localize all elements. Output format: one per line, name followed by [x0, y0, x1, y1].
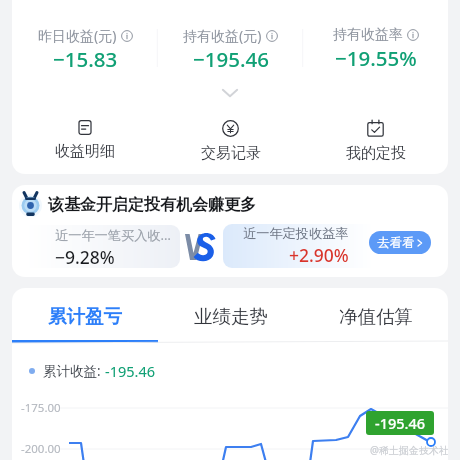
- staticText: 业绩走势: [194, 305, 268, 328]
- staticText: −9.28%: [55, 245, 115, 268]
- staticText: −15.83: [53, 45, 118, 73]
- staticText: 持有收益(元): [183, 26, 262, 45]
- staticText: -200.00: [21, 441, 61, 457]
- button[interactable]: 业绩走势: [158, 305, 303, 343]
- button[interactable]: 持有收益(元): [158, 26, 303, 73]
- staticText: 去看看: [377, 235, 415, 251]
- staticText: 持有收益率: [333, 26, 403, 44]
- staticText: 我的定投: [346, 144, 406, 163]
- staticText: 净值估算: [339, 305, 413, 328]
- button[interactable]: 收益明细: [12, 120, 158, 161]
- staticText: −19.55%: [335, 44, 417, 72]
- staticText: 收益明细: [55, 142, 115, 161]
- staticText: -175.00: [21, 400, 61, 416]
- staticText: -195.46: [375, 413, 426, 433]
- staticText: 昨日收益(元): [38, 26, 117, 45]
- staticText: 近一年定投收益率: [243, 225, 349, 242]
- staticText: 累计盈亏: [48, 305, 122, 328]
- button[interactable]: 累计盈亏: [12, 305, 158, 343]
- staticText: −195.46: [193, 45, 269, 73]
- button[interactable]: 持有收益率: [303, 26, 448, 72]
- button[interactable]: 交易记录: [158, 120, 303, 163]
- staticText: +2.90%: [289, 243, 349, 267]
- button[interactable]: 净值估算: [303, 305, 448, 343]
- staticText: @稀土掘金技术社区: [370, 443, 448, 457]
- button[interactable]: 我的定投: [303, 120, 448, 163]
- staticText: 交易记录: [201, 144, 261, 163]
- button[interactable]: 昨日收益(元): [12, 26, 158, 73]
- button[interactable]: 去看看: [369, 231, 431, 254]
- button[interactable]: 该基金开启定投有机会赚更多: [12, 185, 448, 277]
- staticText: -195.46: [105, 361, 156, 381]
- button[interactable]: Expand: [12, 89, 448, 97]
- staticText: 近一年一笔买入收…: [55, 226, 171, 244]
- staticText: 该基金开启定投有机会赚更多: [48, 195, 256, 215]
- staticText: 累计收益:: [43, 362, 105, 380]
